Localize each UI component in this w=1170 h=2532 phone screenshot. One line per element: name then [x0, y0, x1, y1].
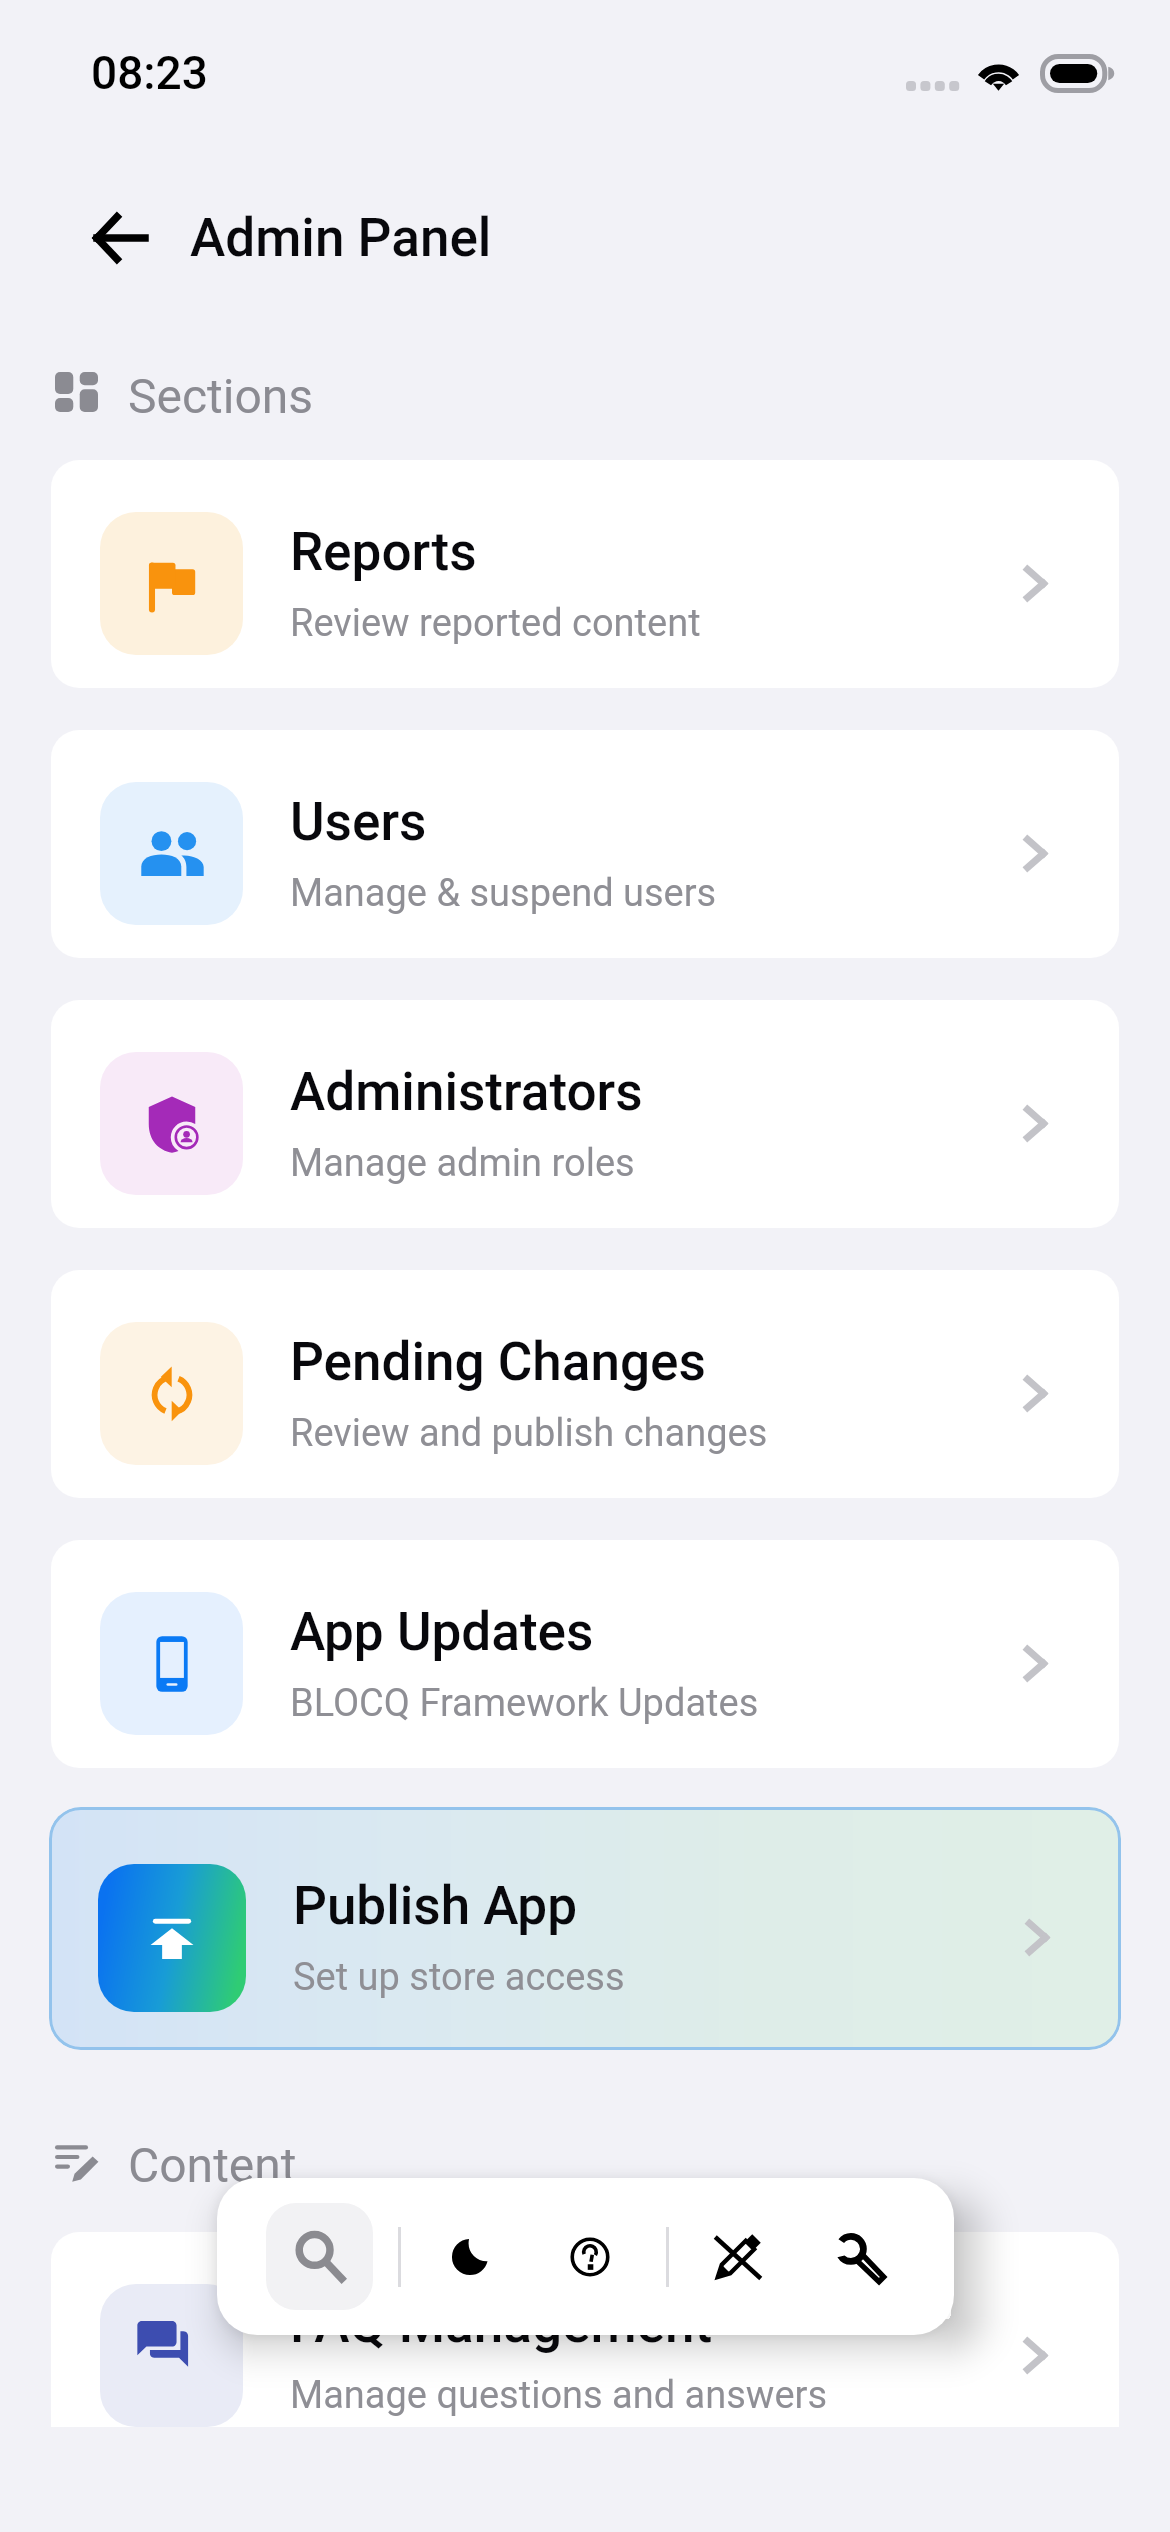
- button[interactable]: Dark mode: [416, 2203, 523, 2310]
- staticText: FAQ Management: [290, 2293, 713, 2355]
- staticText: Manage questions and answers: [290, 2373, 828, 2418]
- staticText: App Updates: [290, 1601, 594, 1663]
- staticText: Pending Changes: [290, 1331, 706, 1393]
- staticText: Admin Panel: [190, 207, 492, 269]
- staticText: Sections: [128, 368, 314, 416]
- staticText: Set up store access: [293, 1955, 625, 2000]
- button[interactable]: Publish App: [49, 1807, 1121, 2050]
- button[interactable]: Users: [51, 730, 1119, 958]
- staticText: Manage & suspend users: [290, 871, 717, 916]
- staticText: Manage admin roles: [290, 1141, 635, 1186]
- button[interactable]: Back: [78, 196, 162, 280]
- button[interactable]: FAQ Management: [51, 2232, 1119, 2460]
- button[interactable]: Settings: [805, 2203, 912, 2310]
- staticText: Users: [290, 791, 427, 853]
- staticText: Reports: [290, 521, 477, 583]
- staticText: Publish App: [293, 1875, 578, 1937]
- button[interactable]: Disable editing: [684, 2203, 791, 2310]
- staticText: 08:23: [91, 46, 208, 100]
- button[interactable]: Administrators: [51, 1000, 1119, 1228]
- button[interactable]: Search: [266, 2203, 373, 2310]
- staticText: Content: [128, 2137, 297, 2185]
- button[interactable]: Pending Changes: [51, 1270, 1119, 1498]
- staticText: Review and publish changes: [290, 1411, 768, 1456]
- button[interactable]: Reports: [51, 460, 1119, 688]
- staticText: Administrators: [290, 1061, 643, 1123]
- staticText: Review reported content: [290, 601, 701, 646]
- button[interactable]: Help: [536, 2203, 643, 2310]
- staticText: BLOCQ Framework Updates: [290, 1681, 759, 1726]
- button[interactable]: App Updates: [51, 1540, 1119, 1768]
